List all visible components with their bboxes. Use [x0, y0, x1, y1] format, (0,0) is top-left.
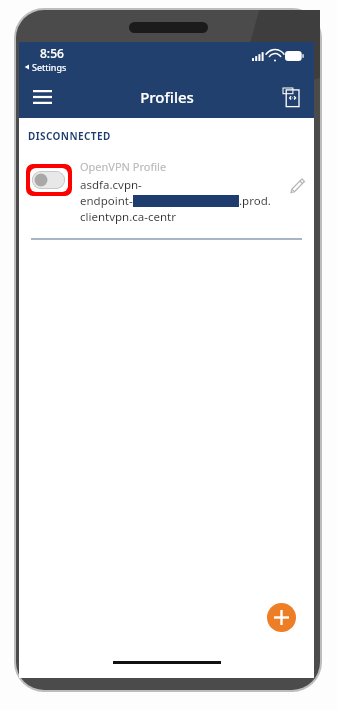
button[interactable]: Connect profile toggle, off: [19, 158, 314, 225]
staticText: 8:56: [40, 45, 64, 61]
button[interactable]: Edit profile: [284, 172, 310, 198]
staticText: Settings: [32, 61, 67, 73]
staticText: asdfa.cvpn-: [80, 177, 142, 193]
staticText: endpoint-: [80, 193, 133, 209]
button[interactable]: Connect profile toggle, off: [32, 171, 65, 189]
staticText: OpenVPN Profile: [80, 159, 167, 174]
staticText: DISCONNECTED: [28, 129, 111, 143]
staticText: Profiles: [140, 87, 194, 107]
staticText: .prod.: [239, 193, 271, 209]
staticText: clientvpn.ca-centr: [80, 209, 176, 225]
button[interactable]: Open navigation menu: [27, 82, 57, 112]
button[interactable]: Add profile: [267, 603, 296, 632]
button[interactable]: Import profile from file: [276, 82, 306, 112]
